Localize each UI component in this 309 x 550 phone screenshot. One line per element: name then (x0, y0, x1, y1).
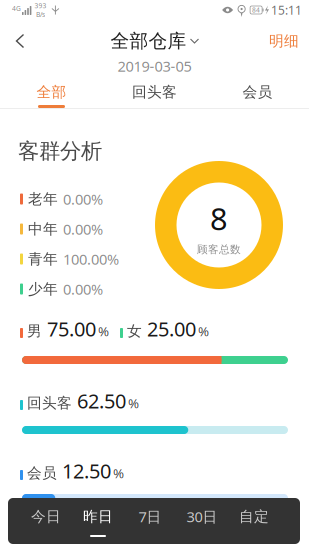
staticText: 84 (252, 6, 260, 14)
staticText: 30日 (186, 507, 217, 526)
staticText: 4G (12, 4, 21, 13)
staticText: 7日 (138, 507, 161, 526)
staticText: 明细 (269, 32, 299, 50)
staticText: % (113, 464, 124, 482)
staticText: 8 (210, 198, 228, 239)
staticText: 自定 (239, 507, 269, 525)
button[interactable]: 昨日 (72, 498, 124, 544)
button[interactable]: Back (0, 24, 40, 58)
staticText: 393 (34, 1, 46, 10)
staticText: 25.00 (147, 315, 196, 342)
staticText: 75.00 (47, 315, 96, 342)
staticText: % (198, 322, 209, 340)
staticText: 女 (127, 322, 142, 340)
staticText: 0.00% (63, 189, 103, 209)
staticText: 12.50 (62, 457, 111, 484)
staticText: 老年 (28, 190, 58, 208)
button[interactable]: 今日 (20, 498, 72, 544)
staticText: 会员 (242, 83, 272, 101)
button[interactable]: 自定 (228, 498, 280, 544)
staticText: 客群分析 (18, 138, 102, 164)
staticText: 0.00% (63, 279, 103, 299)
staticText: 回头客 (132, 83, 177, 101)
staticText: % (128, 394, 139, 412)
staticText: 会员 (27, 464, 57, 482)
button[interactable]: 回头客 (103, 79, 206, 109)
staticText: 100.00% (63, 249, 119, 269)
staticText: 0.00% (63, 219, 103, 239)
staticText: 15:11 (271, 2, 302, 18)
staticText: 全部 (36, 83, 66, 101)
button[interactable]: 7日 (124, 498, 176, 544)
staticText: 今日 (31, 507, 61, 525)
button[interactable]: 30日 (176, 498, 228, 544)
staticText: 中年 (28, 220, 58, 238)
button[interactable]: 全部 (0, 79, 103, 109)
staticText: % (98, 322, 109, 340)
staticText: 62.50 (77, 387, 126, 414)
button[interactable]: 会员 (206, 79, 309, 109)
staticText: 2019-03-05 (117, 56, 191, 76)
staticText: 顾客总数 (197, 243, 241, 256)
staticText: 男 (27, 322, 42, 340)
button[interactable]: 明细 (259, 24, 309, 58)
staticText: 回头客 (27, 394, 72, 412)
staticText: 昨日 (83, 507, 113, 525)
staticText: 全部仓库 (110, 29, 186, 52)
button[interactable]: 全部仓库 (110, 24, 198, 58)
staticText: 少年 (28, 280, 58, 298)
staticText: 青年 (28, 250, 58, 268)
staticText: B/s (36, 10, 45, 19)
